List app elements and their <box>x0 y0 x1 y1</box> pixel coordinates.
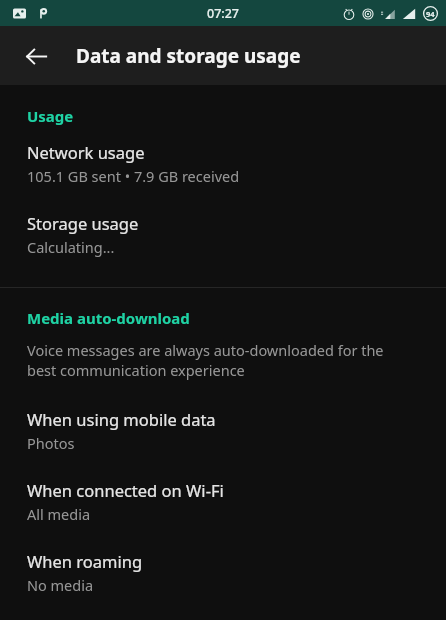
staticText: When roaming <box>27 550 143 572</box>
staticText: No media <box>27 575 94 595</box>
staticText: Data and storage usage <box>76 43 301 69</box>
button[interactable]: Storage usage <box>0 212 446 257</box>
staticText: When connected on Wi-Fi <box>27 479 224 501</box>
staticText: All media <box>27 504 91 524</box>
staticText: 105.1 GB sent • 7.9 GB received <box>27 166 240 186</box>
button[interactable]: When connected on Wi-Fi <box>0 479 446 524</box>
staticText: 07:27 <box>207 5 240 22</box>
staticText: Media auto-download <box>27 308 190 328</box>
staticText: When using mobile data <box>27 408 216 430</box>
staticText: Network usage <box>27 141 145 163</box>
button[interactable]: Network usage <box>0 141 446 186</box>
staticText: 94 <box>426 9 435 19</box>
staticText: Calculating... <box>27 237 115 257</box>
button[interactable]: Back <box>12 32 60 80</box>
button[interactable]: When roaming <box>0 550 446 595</box>
staticText: Usage <box>27 106 74 126</box>
staticText: Voice messages are always auto-downloade… <box>27 340 394 380</box>
staticText: Photos <box>27 433 75 453</box>
staticText: Storage usage <box>27 212 139 234</box>
button[interactable]: When using mobile data <box>0 408 446 453</box>
